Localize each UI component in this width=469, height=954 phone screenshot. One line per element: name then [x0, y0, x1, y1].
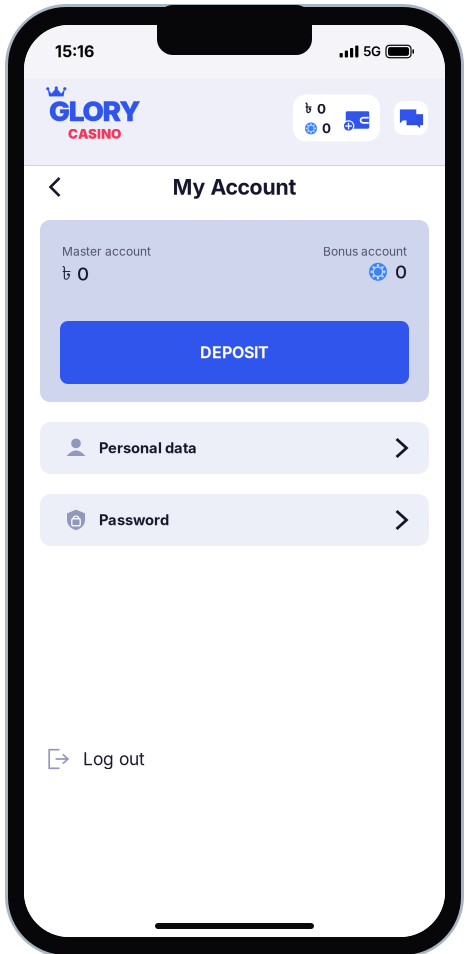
button[interactable]: Log out — [40, 739, 429, 779]
button[interactable]: DEPOSIT — [60, 321, 409, 384]
staticText: 0 — [317, 101, 326, 117]
staticText: 15:16 — [55, 42, 94, 61]
staticText: Master account — [62, 244, 151, 258]
staticText: My Account — [172, 174, 296, 200]
button[interactable]: Personal data — [40, 422, 429, 474]
staticText: 5G — [363, 43, 381, 59]
button[interactable]: Password — [40, 494, 429, 546]
button[interactable]: ৳ — [293, 94, 380, 141]
staticText: 0 — [395, 260, 407, 283]
staticText: Personal data — [99, 439, 197, 457]
staticText: Bonus account — [323, 244, 407, 258]
staticText: CASINO — [68, 126, 121, 142]
staticText: ৳ — [62, 260, 71, 287]
staticText: 0 — [77, 262, 89, 285]
button[interactable]: Support chat — [394, 101, 428, 135]
staticText: Password — [99, 511, 169, 529]
staticText: GLORY — [49, 94, 140, 128]
staticText: Log out — [83, 748, 145, 769]
staticText: 0 — [322, 120, 331, 136]
staticText: ৳ — [305, 99, 312, 118]
button[interactable]: Back — [33, 165, 77, 209]
staticText: DEPOSIT — [200, 343, 269, 362]
